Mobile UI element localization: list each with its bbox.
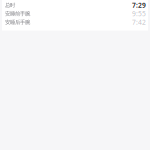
- button[interactable]: 安睡后手腕: [2, 18, 148, 26]
- staticText: 9:55: [132, 9, 146, 18]
- staticText: 7:29: [132, 1, 146, 10]
- button[interactable]: 安睡前手腕: [2, 9, 148, 18]
- staticText: 安睡后手腕: [5, 19, 30, 26]
- button[interactable]: 总时: [2, 1, 148, 9]
- staticText: 7:42: [132, 18, 146, 27]
- staticText: 总时: [5, 2, 15, 9]
- staticText: 安睡前手腕: [5, 10, 30, 17]
